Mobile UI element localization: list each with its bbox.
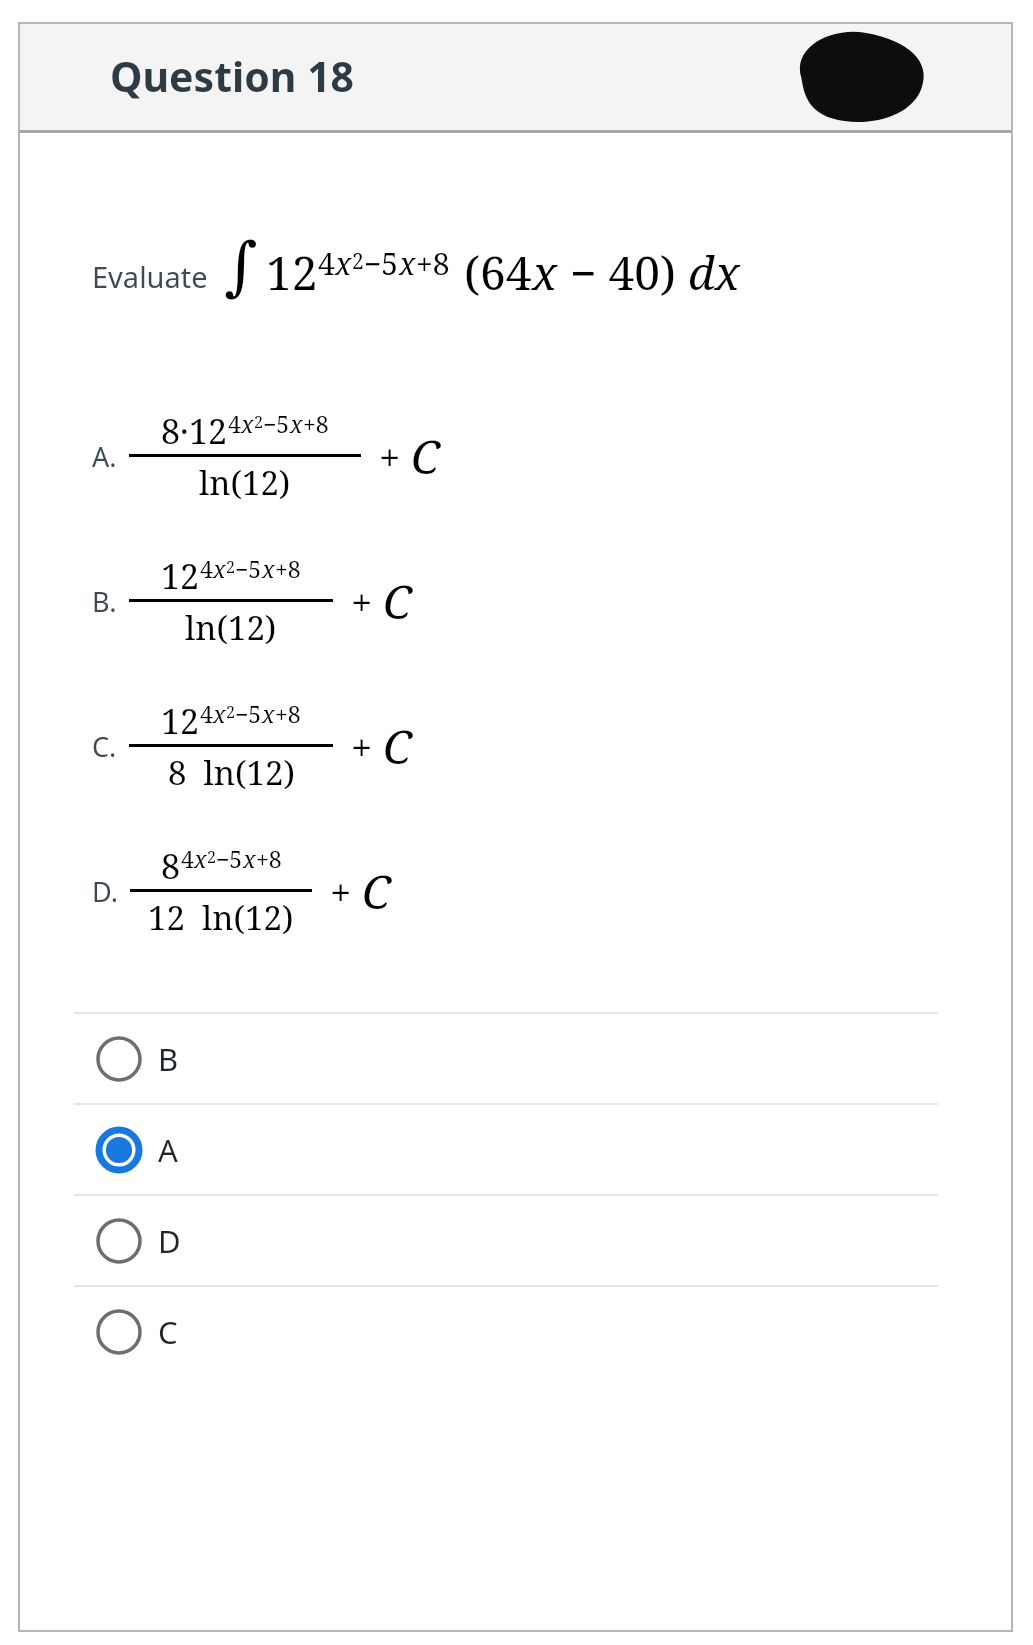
button[interactable]: Option C: [18, 1287, 1013, 1376]
staticText: B: [158, 1038, 179, 1080]
staticText: 2: [226, 701, 235, 723]
button[interactable]: Option D: [18, 1196, 1013, 1285]
staticText: A.: [92, 438, 117, 475]
staticText: D: [158, 1220, 181, 1262]
staticText: ln(12): [185, 605, 277, 650]
staticText: 12: [161, 698, 200, 744]
staticText: +8: [303, 408, 329, 439]
other: Redacted: [789, 29, 927, 123]
staticText: 4: [181, 843, 194, 874]
staticText: 4: [200, 698, 213, 729]
staticText: x: [213, 698, 226, 729]
staticText: −5: [364, 243, 399, 284]
button[interactable]: Option A: [18, 1105, 1013, 1194]
button[interactable]: C.: [92, 698, 1013, 795]
staticText: D.: [92, 873, 118, 910]
staticText: x: [243, 843, 256, 874]
staticText: ln(12): [199, 460, 291, 505]
staticText: 4: [228, 408, 241, 439]
staticText: +8: [256, 843, 282, 874]
staticText: 12: [161, 553, 200, 599]
staticText: B.: [92, 583, 117, 620]
staticText: 2: [352, 247, 364, 276]
button[interactable]: A.: [92, 408, 1013, 505]
staticText: (64: [464, 241, 532, 304]
staticText: 12 ln(12): [148, 895, 294, 940]
staticText: x: [532, 241, 558, 304]
button[interactable]: Option B: [18, 1014, 1013, 1103]
staticText: x: [194, 843, 207, 874]
staticText: +8: [275, 698, 301, 729]
staticText: C: [158, 1311, 178, 1353]
staticText: x: [241, 408, 254, 439]
button[interactable]: D.: [92, 843, 1013, 940]
staticText: x: [262, 553, 275, 584]
staticText: C: [383, 715, 412, 778]
staticText: +: [351, 721, 373, 773]
staticText: 12: [189, 408, 228, 454]
staticText: x: [213, 553, 226, 584]
staticText: dx: [688, 241, 740, 304]
staticText: A: [158, 1129, 178, 1171]
staticText: 4: [200, 553, 213, 584]
staticText: − 40): [558, 241, 676, 304]
staticText: C: [383, 570, 412, 633]
staticText: 2: [254, 411, 263, 433]
staticText: C: [362, 860, 391, 923]
staticText: +: [351, 576, 373, 628]
staticText: Evaluate: [92, 257, 208, 296]
staticText: 8: [161, 843, 181, 889]
staticText: x: [335, 243, 352, 284]
staticText: ∫: [224, 229, 258, 304]
staticText: Question 18: [110, 48, 355, 104]
staticText: −5: [216, 843, 243, 874]
staticText: C: [411, 425, 440, 488]
staticText: −5: [235, 553, 262, 584]
staticText: +: [330, 866, 352, 918]
staticText: x: [262, 698, 275, 729]
staticText: x: [399, 243, 416, 284]
staticText: +: [379, 431, 401, 483]
button[interactable]: B.: [92, 553, 1013, 650]
staticText: 8 ln(12): [168, 750, 295, 795]
staticText: x: [290, 408, 303, 439]
staticText: 2: [226, 556, 235, 578]
staticText: +8: [275, 553, 301, 584]
staticText: 8·: [161, 408, 189, 454]
staticText: +8: [416, 243, 450, 284]
staticText: 2: [207, 846, 216, 868]
staticText: −5: [235, 698, 262, 729]
staticText: −5: [263, 408, 290, 439]
staticText: 12: [266, 241, 318, 304]
staticText: 4: [318, 243, 335, 284]
staticText: C.: [92, 728, 117, 765]
